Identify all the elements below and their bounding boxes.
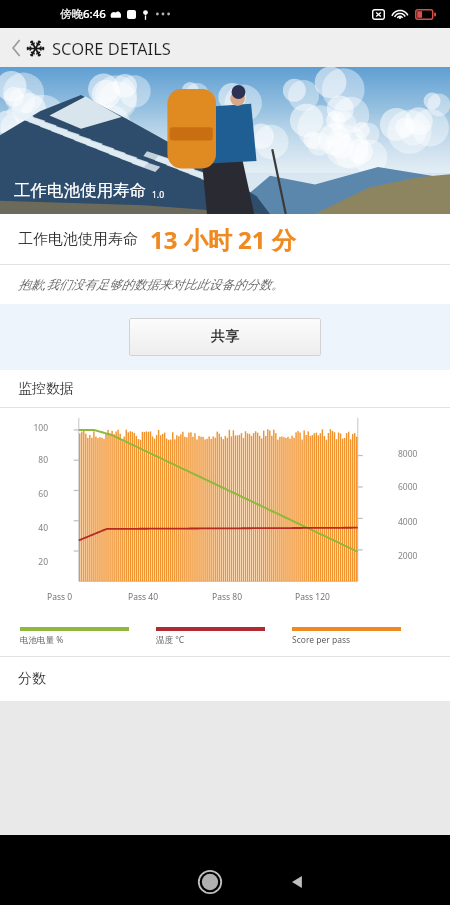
staticText: 100: [20, 422, 48, 434]
staticText: Pass 40: [128, 591, 158, 603]
staticText: 2000: [398, 550, 418, 562]
staticText: 电池电量 %: [20, 634, 64, 646]
button[interactable]: Home: [193, 865, 227, 899]
staticText: 共享: [211, 328, 239, 346]
staticText: 工作电池使用寿命: [14, 180, 146, 201]
staticText: Score per pass: [292, 634, 351, 646]
staticText: 80: [20, 454, 48, 466]
staticText: Pass 120: [295, 591, 330, 603]
button[interactable]: Back: [0, 28, 450, 67]
staticText: 工作电池使用寿命: [18, 230, 138, 249]
staticText: 60: [20, 488, 48, 500]
staticText: 20: [20, 556, 48, 568]
button[interactable]: 共享: [129, 318, 321, 356]
staticText: 8000: [398, 448, 418, 460]
staticText: 6000: [398, 481, 418, 493]
staticText: 13 小时 21 分: [150, 223, 296, 256]
staticText: 傍晚6:46: [60, 6, 106, 22]
staticText: 分数: [18, 670, 46, 688]
staticText: 40: [20, 522, 48, 534]
staticText: 4000: [398, 516, 418, 528]
staticText: SCORE DETAILS: [52, 37, 171, 59]
button[interactable]: Back: [283, 867, 313, 897]
staticText: 监控数据: [18, 380, 74, 398]
staticText: Pass 80: [212, 591, 242, 603]
staticText: 抱歉,我们没有足够的数据来对比此设备的分数。: [18, 276, 284, 293]
staticText: Pass 0: [47, 591, 73, 603]
staticText: 1.0: [152, 189, 165, 201]
staticText: 温度 °C: [156, 634, 185, 646]
